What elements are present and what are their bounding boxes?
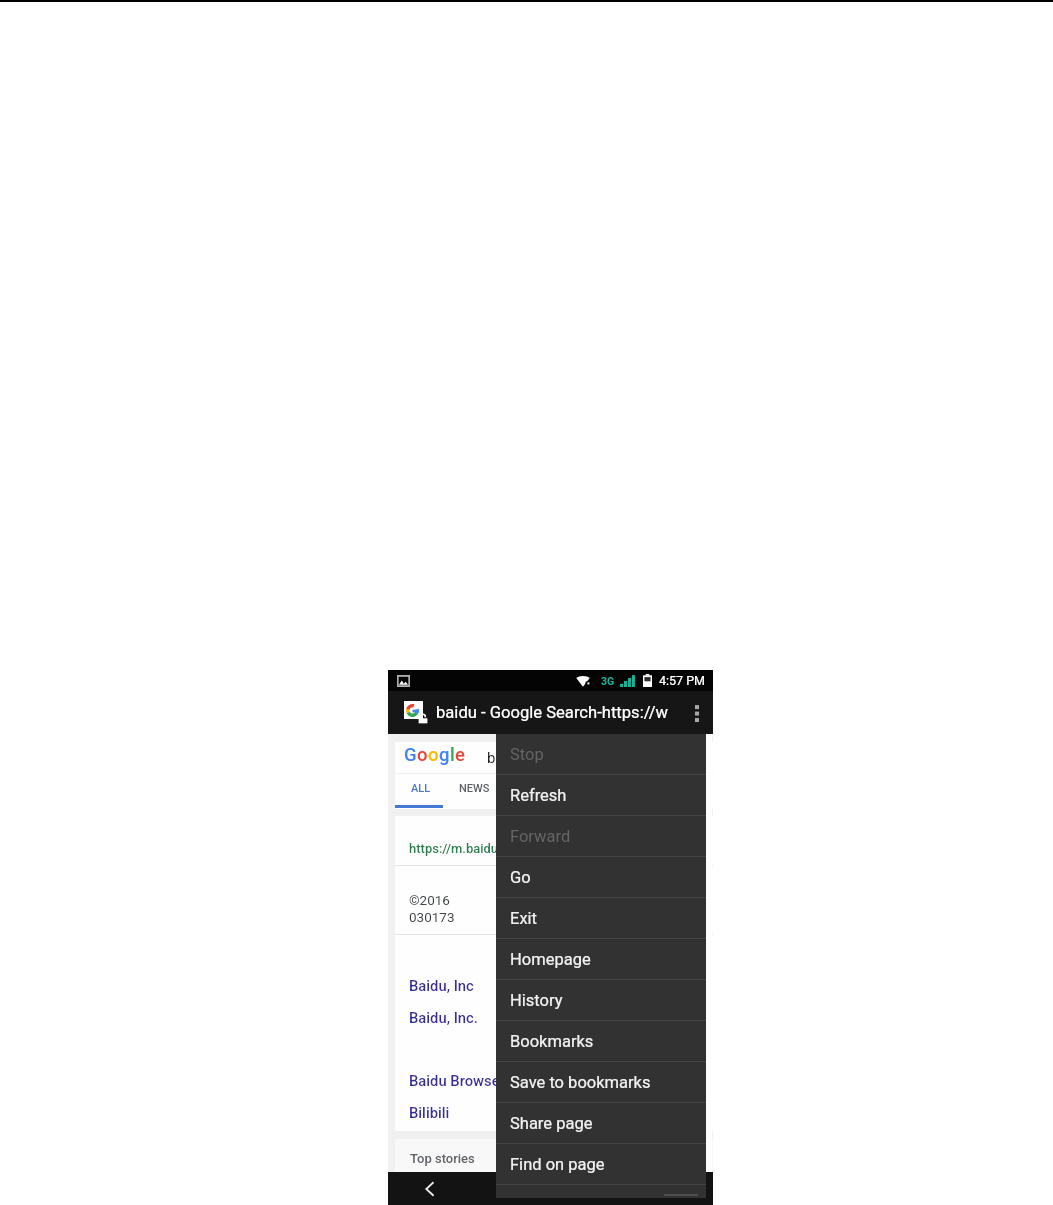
staticText: Baidu, Inc.: [409, 1009, 478, 1026]
staticText: g: [439, 744, 450, 766]
staticText: Stop: [510, 745, 544, 764]
staticText: baidu - Google Search-https://w: [436, 703, 681, 722]
button[interactable]: Save to bookmarks: [496, 1062, 706, 1103]
staticText: Baidu Browser: [409, 1072, 505, 1089]
staticText: Baidu, Inc: [409, 977, 474, 994]
staticText: 030173: [409, 909, 455, 925]
button[interactable]: NEWS: [447, 774, 501, 803]
button[interactable]: https://m.baidu.com: [395, 816, 713, 1131]
staticText: Save to bookmarks: [510, 1073, 651, 1092]
button[interactable]: Go: [496, 857, 706, 898]
button[interactable]: Share page: [496, 1103, 706, 1144]
staticText: Find on page: [510, 1155, 605, 1174]
staticText: 3G: [601, 675, 615, 687]
staticText: Refresh: [510, 786, 567, 805]
staticText: Top stories: [410, 1151, 475, 1166]
button[interactable]: Forward: [496, 816, 706, 857]
button[interactable]: Exit: [496, 898, 706, 939]
button[interactable]: Stop: [496, 734, 706, 775]
staticText: ALL: [411, 782, 431, 795]
staticText: Exit: [510, 909, 537, 928]
staticText: ©2016: [409, 892, 450, 908]
staticText: l: [450, 744, 455, 766]
staticText: o: [428, 744, 439, 766]
button[interactable]: More options: [681, 691, 713, 734]
button[interactable]: History: [496, 980, 706, 1021]
staticText: History: [510, 991, 563, 1010]
button[interactable]: Top stories: [395, 1139, 713, 1172]
staticText: 4:57 PM: [659, 673, 706, 688]
button[interactable]: Homepage: [496, 939, 706, 980]
button[interactable]: ALL: [395, 774, 447, 803]
staticText: Bookmarks: [510, 1032, 594, 1051]
button[interactable]: Find on page: [496, 1144, 706, 1185]
staticText: baidu: [487, 749, 524, 767]
button[interactable]: Bookmarks: [496, 1021, 706, 1062]
button[interactable]: Back: [409, 1172, 449, 1205]
staticText: Homepage: [510, 950, 591, 969]
staticText: Share page: [510, 1114, 593, 1133]
staticText: Bilibili: [409, 1104, 450, 1121]
staticText: o: [417, 744, 428, 766]
staticText: G: [404, 744, 417, 766]
staticText: NEWS: [459, 782, 490, 795]
staticText: Forward: [510, 827, 571, 846]
button[interactable]: Refresh: [496, 775, 706, 816]
staticText: Go: [510, 868, 531, 887]
staticText: e: [455, 744, 465, 766]
staticText: https://m.baidu.com: [409, 841, 528, 856]
